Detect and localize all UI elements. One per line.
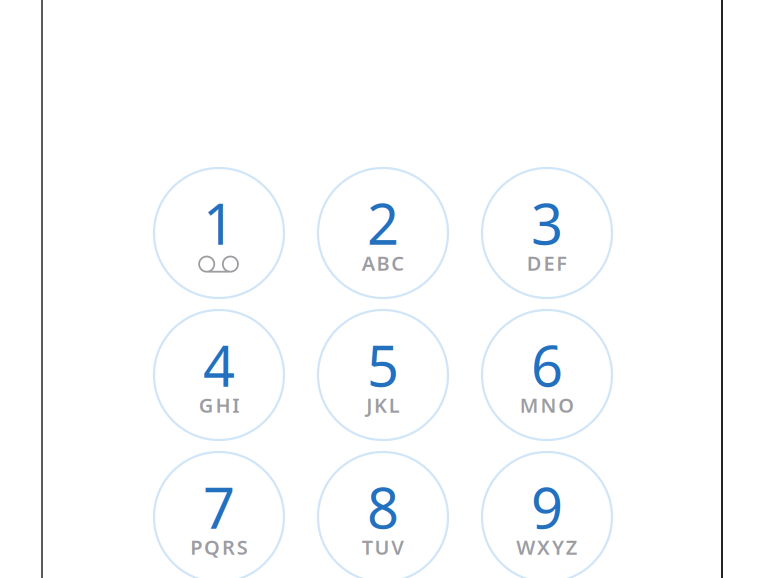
staticText: B	[376, 250, 389, 276]
staticText: 3	[531, 186, 563, 260]
staticText: X	[537, 534, 550, 560]
staticText: N	[540, 392, 556, 418]
staticText: 4	[203, 328, 235, 402]
staticText: 2	[367, 186, 399, 260]
staticText: E	[543, 250, 554, 276]
staticText: O	[558, 392, 574, 418]
staticText: K	[374, 392, 387, 418]
staticText: 5	[367, 328, 399, 402]
button[interactable]: 2, ABC	[318, 168, 448, 298]
staticText: H	[215, 392, 230, 418]
staticText: V	[391, 534, 404, 560]
staticText: J	[366, 392, 372, 418]
button[interactable]: 7, PQRS	[154, 452, 284, 578]
staticText: S	[237, 534, 248, 560]
button[interactable]: 3, DEF	[482, 168, 612, 298]
button[interactable]: 6, MNO	[482, 310, 612, 440]
staticText: 8	[367, 470, 399, 544]
staticText: D	[527, 250, 542, 276]
staticText: A	[362, 250, 375, 276]
button[interactable]: 5, JKL	[318, 310, 448, 440]
staticText: T	[362, 534, 373, 560]
staticText: Y	[552, 534, 564, 560]
staticText: F	[556, 250, 567, 276]
staticText: I	[232, 392, 239, 418]
staticText: 9	[531, 470, 563, 544]
staticText: L	[389, 392, 400, 418]
staticText: 6	[531, 328, 563, 402]
button[interactable]: 9, WXYZ	[482, 452, 612, 578]
staticText: M	[520, 392, 539, 418]
staticText: G	[199, 392, 214, 418]
staticText: Z	[566, 534, 578, 560]
staticText: P	[190, 534, 202, 560]
button[interactable]: 4, GHI	[154, 310, 284, 440]
staticText: C	[391, 250, 404, 276]
staticText: 7	[203, 470, 235, 544]
staticText: 1	[203, 186, 235, 260]
staticText: Q	[204, 534, 220, 560]
staticText: W	[516, 534, 535, 560]
button[interactable]: 8, TUV	[318, 452, 448, 578]
staticText: R	[222, 534, 235, 560]
staticText: U	[374, 534, 389, 560]
button[interactable]: 1, voicemail	[154, 168, 284, 298]
